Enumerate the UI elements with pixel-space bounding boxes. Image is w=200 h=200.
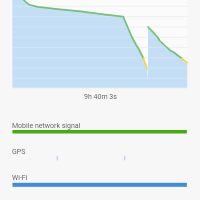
- staticText: Wi-Fi: [12, 174, 28, 182]
- button[interactable]: GPS: [0, 0, 200, 200]
- staticText: 9h 40m 3s: [84, 93, 117, 101]
- staticText: Mobile network signal: [12, 122, 81, 130]
- button[interactable]: Wi-Fi: [0, 0, 200, 200]
- staticText: GPS: [12, 148, 26, 156]
- button[interactable]: Mobile network signal: [0, 0, 200, 200]
